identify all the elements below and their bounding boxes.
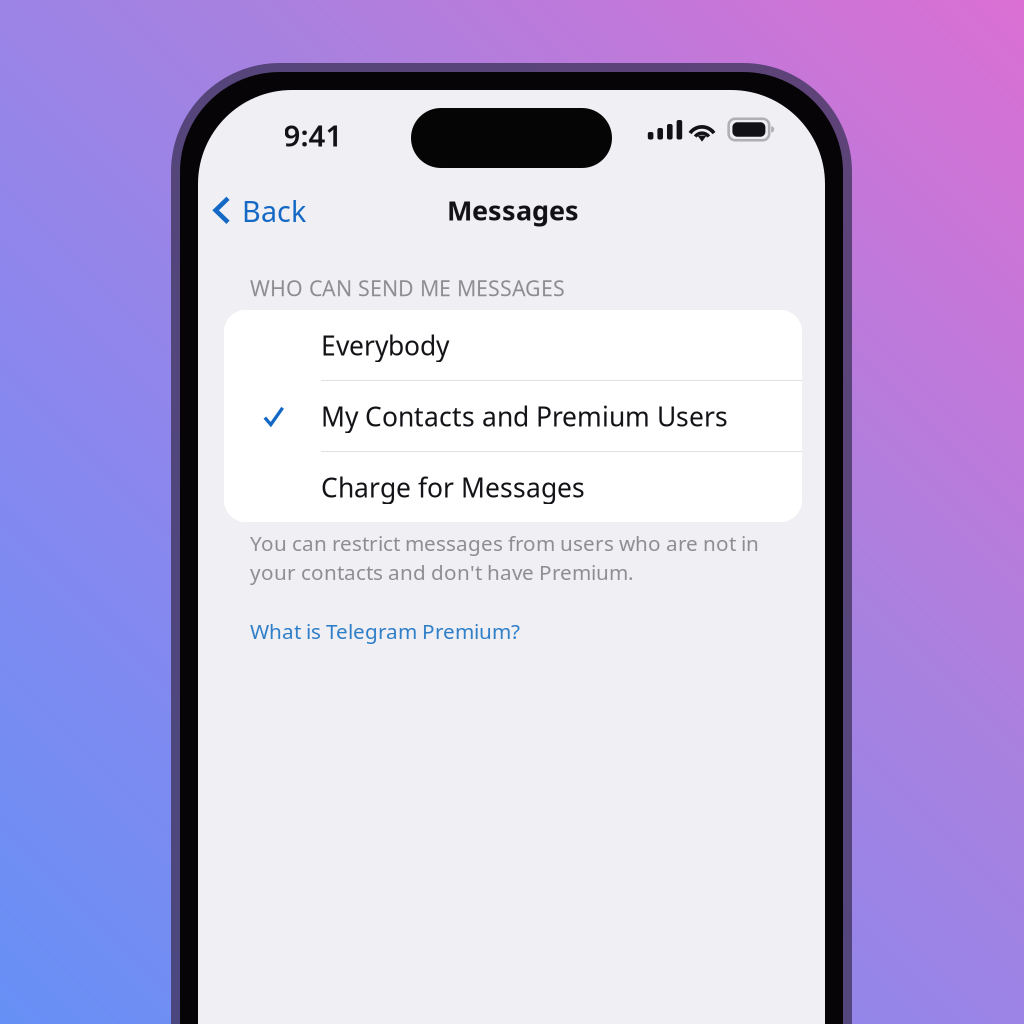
staticText: your contacts and don't have Premium.	[250, 558, 634, 586]
staticText: What is Telegram Premium?	[250, 617, 520, 645]
staticText: 9:41	[283, 115, 342, 155]
button[interactable]: My Contacts and Premium Users	[224, 381, 802, 451]
button[interactable]: What is Telegram Premium?	[250, 614, 550, 648]
staticText: Charge for Messages	[321, 469, 585, 505]
staticText: My Contacts and Premium Users	[321, 398, 728, 434]
button[interactable]: Back	[202, 187, 327, 235]
staticText: WHO CAN SEND ME MESSAGES	[250, 273, 565, 303]
button[interactable]: Everybody	[224, 310, 802, 380]
staticText: You can restrict messages from users who…	[250, 529, 759, 557]
staticText: Everybody	[321, 327, 449, 363]
button[interactable]: Charge for Messages	[224, 452, 802, 522]
staticText: Messages	[447, 192, 579, 228]
staticText: Back	[242, 191, 306, 230]
